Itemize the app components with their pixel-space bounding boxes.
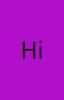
staticText: Hi [20, 35, 43, 65]
